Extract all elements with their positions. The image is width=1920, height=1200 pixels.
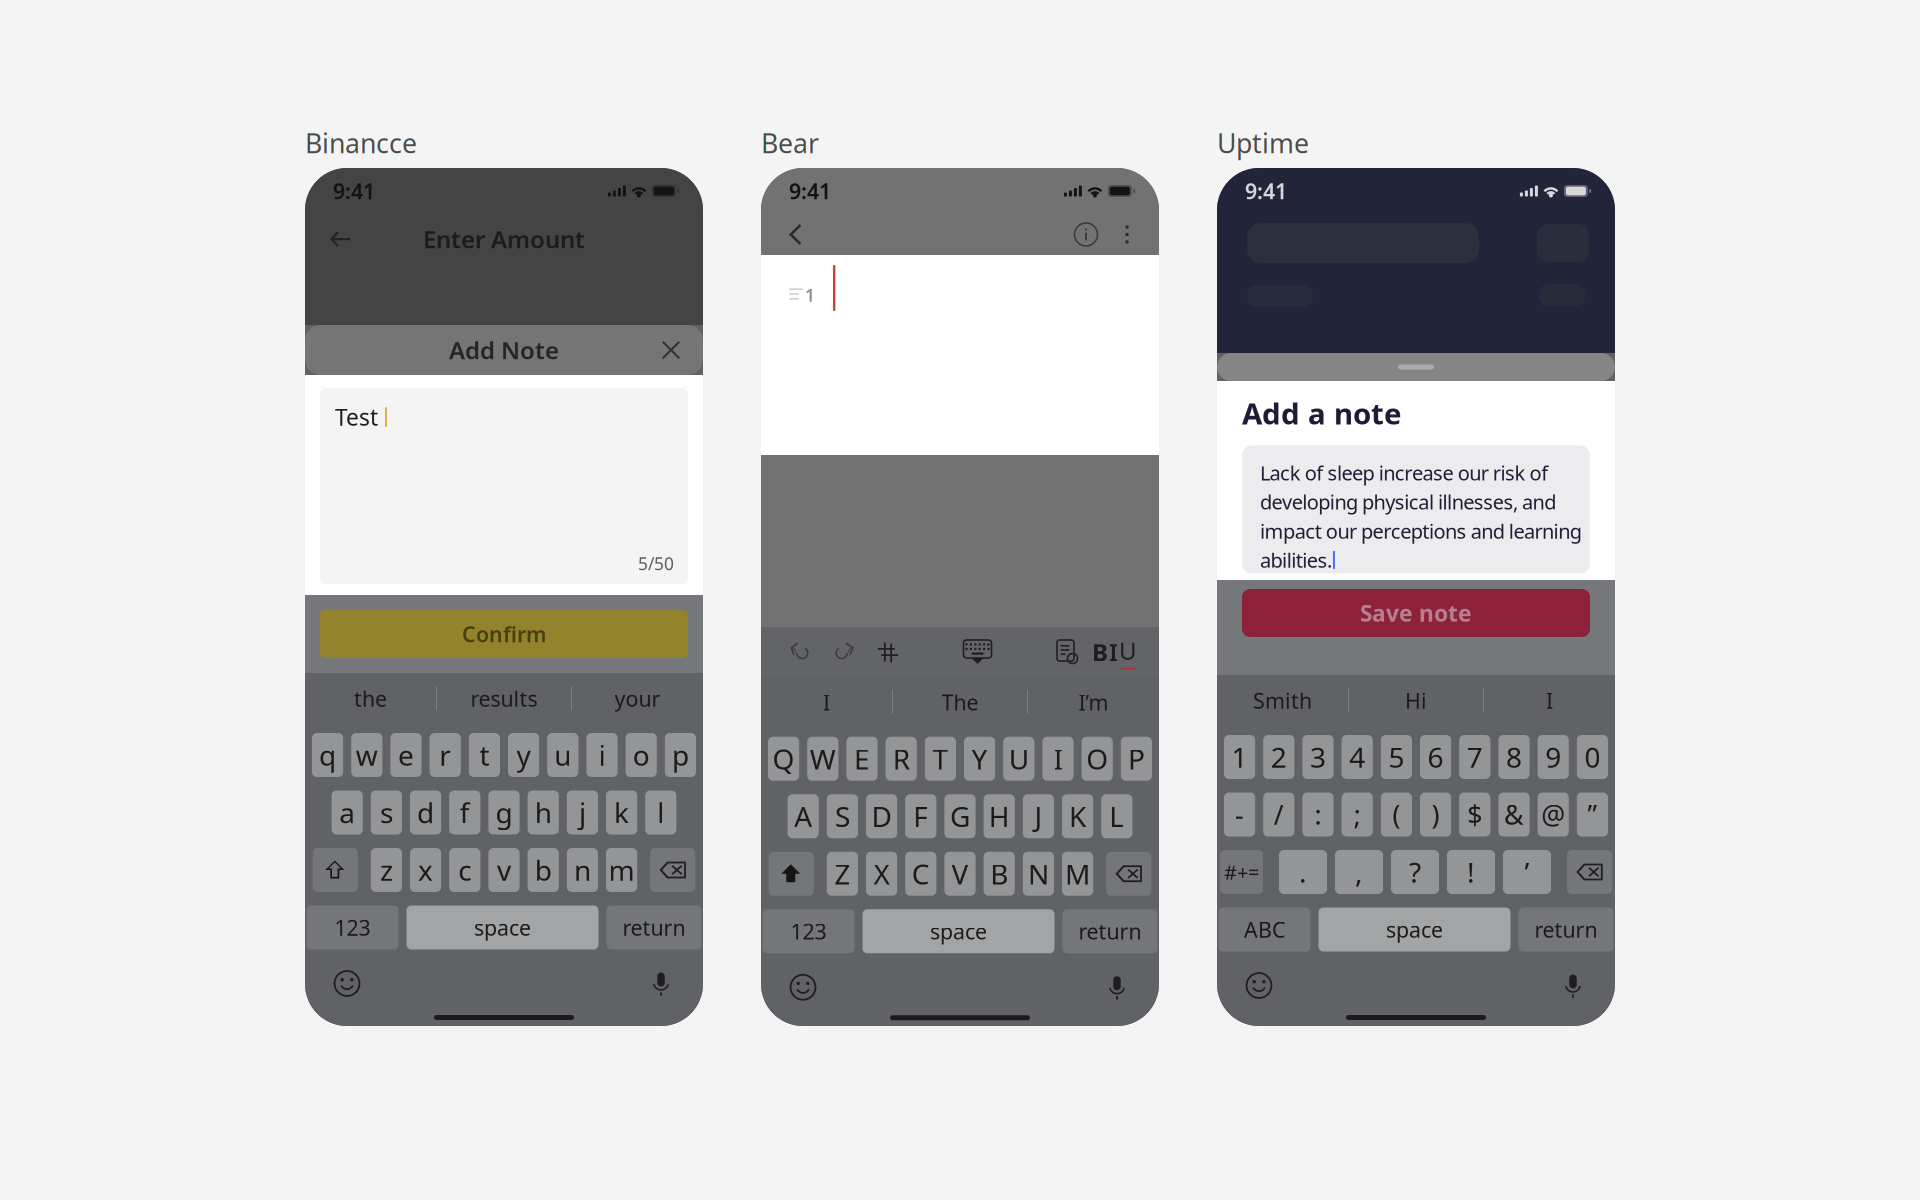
button[interactable]: ( [1381,792,1412,836]
button[interactable]: Shift [769,852,814,896]
button[interactable]: 3 [1302,735,1334,779]
button[interactable]: P [1121,737,1152,781]
button[interactable]: Hi [1349,675,1483,726]
button[interactable]: ” [1577,792,1608,836]
button[interactable]: the [305,673,436,724]
button[interactable]: C [905,852,936,896]
button[interactable]: $ [1459,792,1490,836]
button[interactable]: H [984,794,1015,838]
button[interactable]: I [1484,675,1615,726]
button[interactable]: f [449,790,480,834]
button[interactable]: I’m [1028,677,1159,728]
button[interactable]: b [528,848,559,892]
button[interactable]: ABC [1218,907,1310,951]
button[interactable]: A [788,794,819,838]
button[interactable]: space [406,905,598,949]
button[interactable]: x [410,848,441,892]
button[interactable]: Redo [827,635,861,669]
button[interactable]: Link [1050,635,1084,669]
button[interactable]: o [626,733,657,777]
button[interactable]: I [761,677,892,728]
button[interactable]: . [1279,850,1327,894]
button[interactable]: ’ [1503,850,1551,894]
button[interactable]: ? [1391,850,1439,894]
button[interactable]: Delete [1106,852,1151,896]
button[interactable]: Dictation [1095,967,1139,1007]
button[interactable]: R [886,737,917,781]
button[interactable]: i [586,733,618,777]
button[interactable]: return [606,905,701,949]
button[interactable]: B [984,852,1015,896]
button[interactable]: Confirm [320,610,688,658]
button[interactable]: I [1042,737,1074,781]
button[interactable]: : [1302,792,1334,836]
button[interactable]: M [1062,852,1093,896]
button[interactable]: Z [827,852,858,896]
button[interactable]: s [371,790,402,834]
button[interactable]: v [488,848,520,892]
button[interactable]: ; [1342,792,1373,836]
button[interactable]: w [351,733,382,777]
button[interactable]: Y [964,737,995,781]
button[interactable]: n [567,848,598,892]
button[interactable]: 7 [1459,735,1490,779]
button[interactable]: Shift [313,848,358,892]
button[interactable]: y [508,733,539,777]
button[interactable]: E [846,737,878,781]
button[interactable]: V [944,852,976,896]
button[interactable]: Save note [1242,589,1590,637]
button[interactable]: h [528,790,559,834]
button[interactable]: X [866,852,897,896]
button[interactable]: Emoji [1237,965,1281,1005]
button[interactable]: The [893,677,1027,728]
button[interactable]: Q [768,737,799,781]
button[interactable]: space [862,909,1054,953]
button[interactable]: k [606,790,637,834]
button[interactable]: Emoji [325,963,369,1003]
button[interactable]: Dictation [1551,965,1595,1005]
button[interactable]: #+= [1220,850,1263,894]
button[interactable]: Delete [1567,850,1612,894]
button[interactable]: d [410,790,441,834]
button[interactable]: 123 [306,905,398,949]
button[interactable]: q [312,733,343,777]
button[interactable]: S [827,794,858,838]
button[interactable]: Dictation [639,963,683,1003]
button[interactable]: D [866,794,897,838]
button[interactable]: space [1318,907,1510,951]
button[interactable]: j [567,790,598,834]
button[interactable]: 8 [1498,735,1530,779]
button[interactable]: 6 [1420,735,1451,779]
button[interactable]: Smith [1217,675,1348,726]
button[interactable]: m [606,848,637,892]
button[interactable]: return [1518,907,1613,951]
button[interactable]: z [371,848,402,892]
button[interactable]: results [437,673,571,724]
button[interactable]: T [925,737,956,781]
button[interactable]: Back [317,216,363,262]
button[interactable]: O [1082,737,1113,781]
button[interactable]: Hide keyboard [960,635,994,669]
button[interactable]: More [1107,213,1147,255]
button[interactable]: a [332,790,363,834]
button[interactable]: 9 [1538,735,1569,779]
button[interactable]: return [1062,909,1157,953]
button[interactable]: g [488,790,520,834]
button[interactable]: J [1023,794,1054,838]
button[interactable]: 2 [1263,735,1294,779]
button[interactable]: Close [649,328,693,372]
button[interactable]: l [645,790,676,834]
button[interactable]: F [905,794,936,838]
button[interactable]: L [1101,794,1132,838]
button[interactable]: t [469,733,500,777]
button[interactable]: your [572,673,703,724]
button[interactable]: - [1224,792,1255,836]
button[interactable]: Back [773,213,817,255]
button[interactable]: 1 [1224,735,1255,779]
button[interactable]: 4 [1342,735,1373,779]
button[interactable]: K [1062,794,1093,838]
button[interactable]: ) [1420,792,1451,836]
button[interactable]: Tag [871,635,905,669]
button[interactable]: u [547,733,578,777]
button[interactable]: 5 [1381,735,1412,779]
